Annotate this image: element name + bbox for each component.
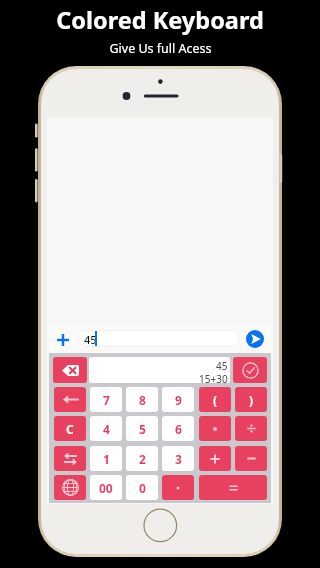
button[interactable]: Add bbox=[57, 334, 69, 346]
staticText: C bbox=[66, 421, 74, 437]
button[interactable]: 45 bbox=[78, 330, 239, 347]
button[interactable]: Confirm bbox=[233, 357, 267, 383]
button[interactable]: 00 bbox=[90, 475, 122, 500]
staticText: 7 bbox=[103, 392, 110, 408]
staticText: 8 bbox=[139, 392, 146, 408]
button[interactable]: Equals bbox=[199, 475, 267, 500]
button[interactable]: Languages bbox=[54, 475, 86, 500]
staticText: 9 bbox=[175, 392, 182, 408]
staticText: 1 bbox=[103, 451, 110, 467]
staticText: 45 bbox=[216, 359, 228, 373]
staticText: 0 bbox=[139, 480, 146, 496]
staticText: Colored Keyboard bbox=[56, 4, 264, 36]
button[interactable]: 45 bbox=[89, 357, 230, 383]
button[interactable]: ) bbox=[235, 387, 267, 412]
button[interactable]: 9 bbox=[162, 387, 194, 412]
button[interactable]: C bbox=[54, 416, 86, 441]
staticText: 5 bbox=[139, 421, 146, 437]
button[interactable]: 6 bbox=[162, 416, 194, 441]
button[interactable]: Send bbox=[246, 330, 264, 348]
button[interactable]: 8 bbox=[126, 387, 158, 412]
staticText: 6 bbox=[175, 421, 182, 437]
button[interactable]: Swap bbox=[54, 446, 86, 471]
button[interactable]: Minus bbox=[235, 446, 267, 471]
button[interactable]: 0 bbox=[126, 475, 158, 500]
staticText: ) bbox=[249, 392, 254, 408]
staticText: Give Us full Acess bbox=[109, 40, 212, 57]
button[interactable]: 3 bbox=[162, 446, 194, 471]
staticText: 4 bbox=[103, 421, 110, 437]
button[interactable]: 7 bbox=[90, 387, 122, 412]
button[interactable]: Decimal point bbox=[162, 475, 194, 500]
staticText: 00 bbox=[99, 480, 113, 496]
button[interactable]: 5 bbox=[126, 416, 158, 441]
button[interactable]: Backspace bbox=[53, 357, 87, 383]
staticText: 15+30 bbox=[199, 372, 228, 383]
button[interactable]: Divide bbox=[235, 416, 267, 441]
button[interactable]: Multiply bbox=[199, 416, 231, 441]
staticText: ( bbox=[213, 392, 218, 408]
button[interactable]: 1 bbox=[90, 446, 122, 471]
button[interactable]: 4 bbox=[90, 416, 122, 441]
staticText: 3 bbox=[175, 451, 182, 467]
staticText: 2 bbox=[139, 451, 146, 467]
button[interactable]: Back bbox=[54, 387, 86, 412]
button[interactable]: ( bbox=[199, 387, 231, 412]
button[interactable]: Plus bbox=[199, 446, 231, 471]
staticText: 45 bbox=[84, 332, 97, 347]
button[interactable]: 2 bbox=[126, 446, 158, 471]
